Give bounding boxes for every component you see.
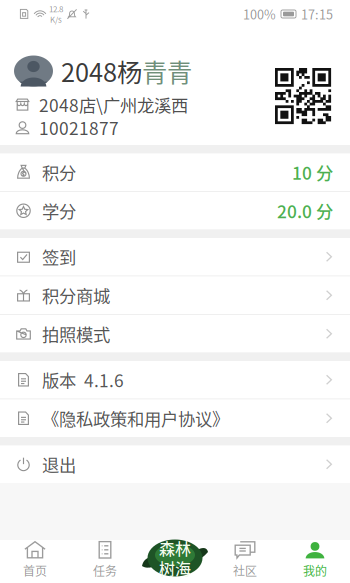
staticText: 退出 [42,452,76,477]
button[interactable]: 森林树海 [141,539,209,577]
staticText: 10021877 [39,115,119,140]
button[interactable]: 积分 [0,153,350,191]
staticText: 森林 [159,536,191,559]
staticText: 版本 4.1.6 [42,367,124,392]
button[interactable]: 版本 4.1.6 [0,361,350,398]
staticText: 10 分 [292,160,333,185]
staticText: 社区 [233,562,257,579]
staticText: 我的 [303,562,327,579]
button[interactable]: 积分商城 [0,276,350,314]
staticText: 积分商城 [42,283,110,308]
button[interactable]: 我的 [280,540,350,583]
button[interactable]: 退出 [0,445,350,483]
staticText: 20.0 分 [277,198,333,223]
staticText: 签到 [42,244,76,269]
button[interactable]: 社区 [210,540,280,583]
button[interactable]: 首页 [0,540,70,583]
staticText: 树海 [159,556,191,580]
staticText: 《隐私政策和用户协议》 [42,406,229,431]
staticText: K/s [50,13,62,25]
button[interactable]: 学分 [0,192,350,229]
staticText: 2048杨 [61,53,142,89]
button[interactable]: 《隐私政策和用户协议》 [0,399,350,437]
staticText: 首页 [23,562,47,579]
staticText: 学分 [42,198,76,223]
button[interactable]: 任务 [70,540,140,583]
staticText: 拍照模式 [42,321,110,346]
button[interactable]: 签到 [0,238,350,275]
staticText: 12.8 [49,3,63,14]
staticText: 积分 [42,160,76,185]
staticText: 任务 [93,562,117,579]
staticText: 17:15 [301,5,333,23]
button[interactable]: 拍照模式 [0,315,350,352]
staticText: 青青 [142,53,192,89]
staticText: 100% [243,5,276,23]
staticText: 2048店\广州龙溪西 [39,92,188,117]
